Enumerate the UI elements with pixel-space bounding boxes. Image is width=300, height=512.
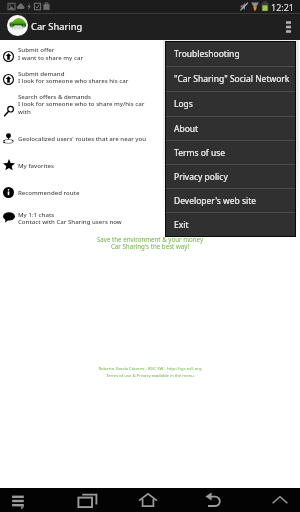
staticText: My favorites xyxy=(18,161,55,169)
staticText: with xyxy=(18,107,31,115)
staticText: Logs xyxy=(174,98,193,110)
staticText: Recommended route xyxy=(18,188,80,196)
button[interactable] xyxy=(0,186,165,198)
button[interactable] xyxy=(0,91,165,117)
button[interactable]: Menu xyxy=(0,488,40,512)
button[interactable]: Privacy policy xyxy=(166,165,295,188)
staticText: Contact with Car Sharing users now xyxy=(18,217,122,225)
button[interactable]: Terms of use xyxy=(166,141,295,164)
button[interactable] xyxy=(0,208,165,227)
staticText: I look for someone who shares his car xyxy=(18,76,129,84)
button[interactable] xyxy=(0,160,165,172)
button[interactable]: Troubleshooting xyxy=(166,42,295,66)
staticText: Save the environment & your money Car Sh… xyxy=(0,235,300,251)
button[interactable]: Recent apps xyxy=(66,488,106,512)
button[interactable] xyxy=(0,44,165,63)
button[interactable]: "Car Sharing" Social Network xyxy=(166,67,295,91)
staticText: Search offers & demands xyxy=(18,92,92,100)
staticText: Geolocalized users' routes that are near… xyxy=(18,134,147,142)
button[interactable]: Logs xyxy=(166,92,295,116)
staticText: Roberto García Cáceres - RGC SW - http:/… xyxy=(0,366,300,378)
button[interactable]: Expand xyxy=(260,488,300,512)
staticText: My 1:1 chats xyxy=(18,210,55,218)
staticText: Privacy policy xyxy=(174,171,228,183)
staticText: 12:21 xyxy=(271,1,295,13)
staticText: Terms of use xyxy=(174,147,226,159)
staticText: Car Sharing xyxy=(31,20,83,33)
staticText: About xyxy=(174,123,199,135)
button[interactable] xyxy=(0,132,165,144)
staticText: Exit xyxy=(174,219,189,231)
staticText: Troubleshooting xyxy=(174,48,240,60)
staticText: Submit demand xyxy=(18,69,65,77)
staticText: I look for someone who to share my/his c… xyxy=(18,99,145,107)
button[interactable]: More options xyxy=(276,13,300,40)
button[interactable] xyxy=(0,67,165,86)
button[interactable]: Exit xyxy=(166,213,295,236)
button[interactable]: Developer's web site xyxy=(166,189,295,212)
staticText: Submit offer xyxy=(18,45,55,53)
button[interactable]: Back xyxy=(195,488,235,512)
button[interactable]: Car Sharing, home xyxy=(0,13,90,40)
staticText: Developer's web site xyxy=(174,195,257,207)
button[interactable]: Home xyxy=(130,488,170,512)
staticText: I want to share my car xyxy=(18,53,83,61)
staticText: "Car Sharing" Social Network xyxy=(174,73,290,85)
button[interactable]: About xyxy=(166,117,295,140)
